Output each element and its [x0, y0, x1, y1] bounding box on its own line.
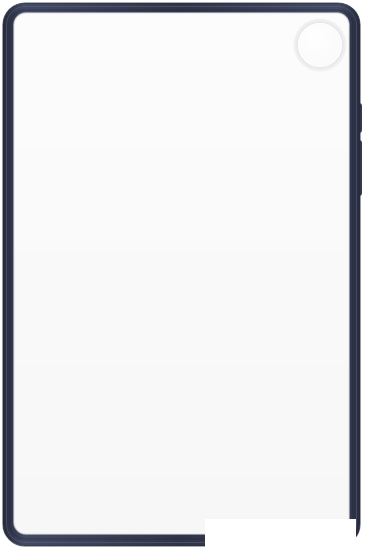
button[interactable]: Galaxy Tab clear protective case, navy b…: [0, 0, 366, 550]
